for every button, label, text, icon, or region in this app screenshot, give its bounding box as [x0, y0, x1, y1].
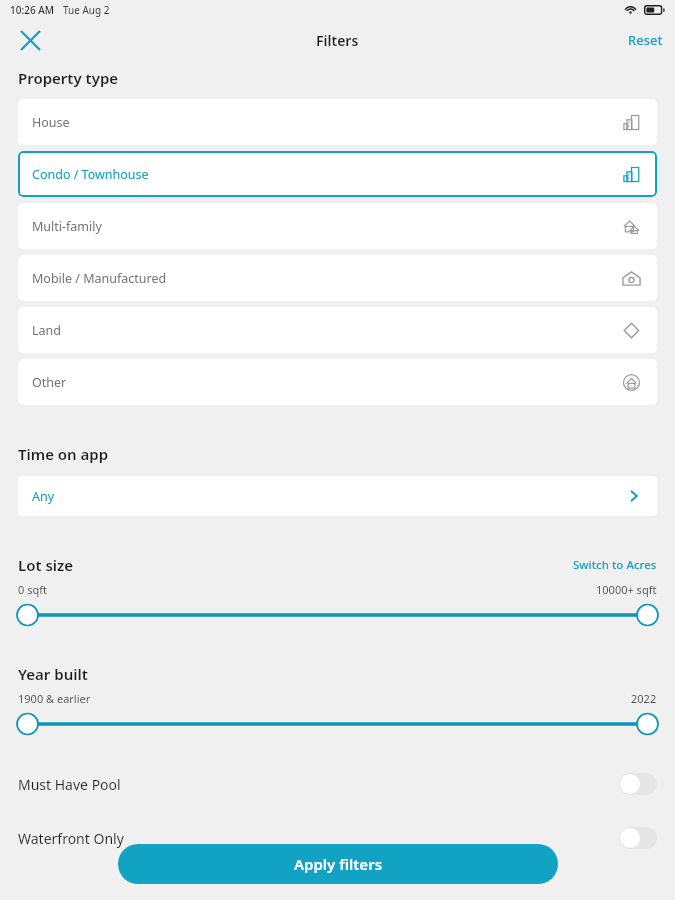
- button[interactable]: Any: [18, 476, 657, 516]
- button[interactable]: Land: [18, 307, 657, 353]
- staticText: 0 sqft: [18, 582, 47, 597]
- button[interactable]: Mobile / Manufactured: [18, 255, 657, 301]
- button[interactable]: Apply filters: [118, 844, 558, 884]
- staticText: 10000+ sqft: [596, 582, 657, 597]
- staticText: Multi-family: [32, 218, 102, 235]
- staticText: Filters: [316, 31, 359, 50]
- staticText: Lot size: [18, 555, 74, 575]
- button[interactable]: Multi-family: [18, 203, 657, 249]
- staticText: Tue Aug 2: [63, 3, 110, 17]
- button[interactable]: Close: [10, 20, 50, 60]
- staticText: Condo / Townhouse: [32, 166, 149, 183]
- staticText: Time on app: [18, 444, 109, 464]
- staticText: Reset: [628, 31, 663, 49]
- staticText: Land: [32, 322, 61, 339]
- button[interactable]: Other: [18, 359, 657, 405]
- staticText: House: [32, 114, 70, 131]
- staticText: 10:26 AM: [10, 3, 54, 17]
- staticText: Property type: [18, 68, 119, 88]
- staticText: Any: [32, 488, 55, 505]
- staticText: Waterfront Only: [18, 829, 124, 848]
- button[interactable]: Reset: [628, 31, 663, 49]
- staticText: Apply filters: [294, 854, 383, 874]
- staticText: Switch to Acres: [573, 557, 657, 573]
- staticText: Year built: [18, 664, 88, 684]
- button[interactable]: Range slider: [0, 711, 675, 737]
- button[interactable]: Switch to Acres: [573, 557, 657, 573]
- staticText: Mobile / Manufactured: [32, 270, 167, 287]
- staticText: 2022: [631, 691, 657, 706]
- button[interactable]: Waterfront Only: [18, 825, 657, 851]
- staticText: 1900 & earlier: [18, 691, 91, 706]
- button[interactable]: House: [18, 99, 657, 145]
- staticText: Must Have Pool: [18, 775, 121, 794]
- button[interactable]: Must Have Pool: [18, 771, 657, 797]
- button[interactable]: Range slider: [0, 602, 675, 628]
- button[interactable]: Condo / Townhouse: [18, 151, 657, 197]
- staticText: Other: [32, 374, 67, 391]
